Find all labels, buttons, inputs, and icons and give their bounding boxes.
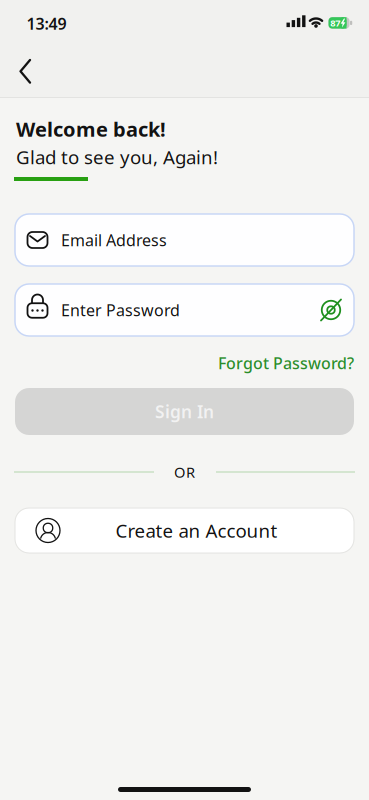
staticText: Create an Account <box>115 518 277 543</box>
staticText: Forgot Password? <box>218 352 354 374</box>
staticText: Glad to see you, Again! <box>16 145 218 169</box>
staticText: Welcome back! <box>16 116 166 142</box>
button[interactable]: Email Address <box>15 214 354 266</box>
button[interactable]: Sign In <box>15 388 354 435</box>
staticText: Email Address <box>61 229 167 251</box>
button[interactable]: Show password <box>309 288 353 332</box>
button[interactable]: Enter Password <box>15 284 354 336</box>
staticText: OR <box>174 462 195 482</box>
button[interactable]: Back <box>3 49 47 93</box>
button[interactable]: Forgot Password? <box>0 352 369 374</box>
button[interactable]: Create an Account <box>15 508 354 553</box>
staticText: 13:49 <box>26 13 66 34</box>
staticText: Sign In <box>155 400 214 423</box>
staticText: 87 <box>330 17 340 29</box>
staticText: Enter Password <box>61 299 180 321</box>
